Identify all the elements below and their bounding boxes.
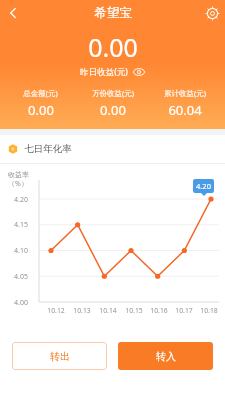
staticText: 累计收益(元) (164, 88, 206, 98)
staticText: 转入 (156, 350, 176, 363)
button[interactable]: 累计收益(元) (149, 88, 221, 119)
button[interactable]: 万份收益(元) (77, 88, 149, 119)
staticText: 10.13 (73, 306, 91, 315)
staticText: 0.00 (28, 101, 54, 119)
staticText: 10.12 (47, 306, 65, 315)
staticText: 4.15 (14, 220, 28, 230)
staticText: 4.20 (14, 195, 28, 205)
staticText: 收益率 (8, 170, 29, 179)
staticText: 希望宝 (94, 5, 132, 21)
staticText: 昨日收益(元) (80, 66, 128, 78)
staticText: （%） (8, 179, 28, 189)
button[interactable]: 转出 (12, 342, 107, 370)
staticText: 4.05 (14, 272, 28, 282)
button[interactable]: 七日年化率 (0, 135, 225, 163)
staticText: 总金额(元) (23, 88, 58, 98)
staticText: 4.20 (196, 181, 211, 191)
staticText: 10.15 (125, 306, 143, 315)
button[interactable]: 总金额(元) (4, 88, 77, 119)
staticText: 七日年化率 (24, 143, 72, 155)
staticText: 0.00 (88, 30, 138, 64)
staticText: 转出 (50, 350, 70, 363)
staticText: 0.00 (100, 101, 126, 119)
staticText: 10.17 (175, 306, 193, 315)
button[interactable]: 昨日收益(元) (80, 66, 145, 78)
staticText: 10.18 (200, 306, 218, 315)
staticText: 4.10 (14, 246, 28, 256)
button[interactable]: Settings (199, 0, 225, 26)
button[interactable]: 转入 (118, 342, 213, 370)
staticText: 万份收益(元) (92, 88, 134, 98)
staticText: 10.16 (150, 306, 168, 315)
staticText: 60.04 (168, 101, 202, 119)
button[interactable]: Back (0, 0, 26, 26)
staticText: 10.14 (99, 306, 117, 315)
staticText: 4.00 (14, 298, 28, 308)
other: Toggle visibility (133, 66, 145, 78)
